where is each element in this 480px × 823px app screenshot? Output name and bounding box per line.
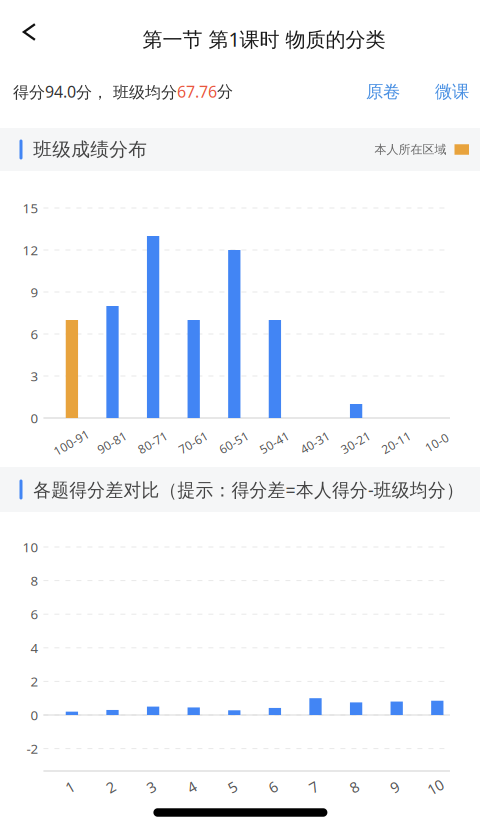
- staticText: 30-21: [340, 434, 372, 450]
- staticText: 原卷: [366, 81, 400, 102]
- staticText: 15: [22, 199, 38, 217]
- staticText: 5: [228, 777, 236, 797]
- staticText: 本人所在区域: [374, 142, 446, 157]
- staticText: 0: [30, 409, 38, 427]
- staticText: 各题得分差对比（提示：得分差=本人得分-班级均分）: [33, 477, 480, 502]
- staticText: 100-91: [52, 434, 91, 450]
- staticText: 得分94.0分， 班级均分: [13, 81, 177, 102]
- staticText: 2: [30, 672, 38, 690]
- staticText: 60-51: [218, 434, 250, 450]
- staticText: 10-0: [424, 434, 449, 450]
- staticText: 7: [309, 777, 317, 797]
- staticText: 8: [30, 572, 38, 589]
- staticText: 70-61: [177, 434, 209, 450]
- button[interactable]: Back: [6, 9, 52, 55]
- staticText: 20-11: [380, 434, 412, 450]
- staticText: 67.76: [177, 81, 217, 102]
- staticText: 80-71: [137, 434, 169, 450]
- staticText: 40-31: [299, 434, 331, 450]
- staticText: 第一节 第1课时 物质的分类: [142, 26, 385, 52]
- staticText: 8: [350, 777, 358, 797]
- staticText: 2: [106, 777, 114, 797]
- staticText: 1: [66, 777, 74, 797]
- staticText: 90-81: [96, 434, 128, 450]
- staticText: 3: [30, 367, 38, 385]
- staticText: -2: [26, 740, 38, 757]
- staticText: 微课: [435, 81, 469, 102]
- staticText: 9: [30, 283, 38, 301]
- staticText: 50-41: [258, 434, 290, 450]
- staticText: 9: [391, 777, 399, 797]
- staticText: 3: [147, 777, 155, 797]
- staticText: 10: [22, 538, 38, 556]
- staticText: 6: [30, 605, 38, 623]
- staticText: 班级成绩分布: [33, 138, 147, 161]
- staticText: 0: [30, 706, 38, 724]
- button[interactable]: 微课: [427, 72, 475, 111]
- button[interactable]: 原卷: [357, 72, 427, 111]
- staticText: 分: [217, 82, 233, 101]
- staticText: 4: [30, 639, 38, 657]
- staticText: 12: [22, 241, 38, 259]
- staticText: 6: [30, 325, 38, 343]
- staticText: 6: [269, 777, 277, 797]
- staticText: 10: [427, 777, 443, 797]
- staticText: 4: [188, 777, 196, 797]
